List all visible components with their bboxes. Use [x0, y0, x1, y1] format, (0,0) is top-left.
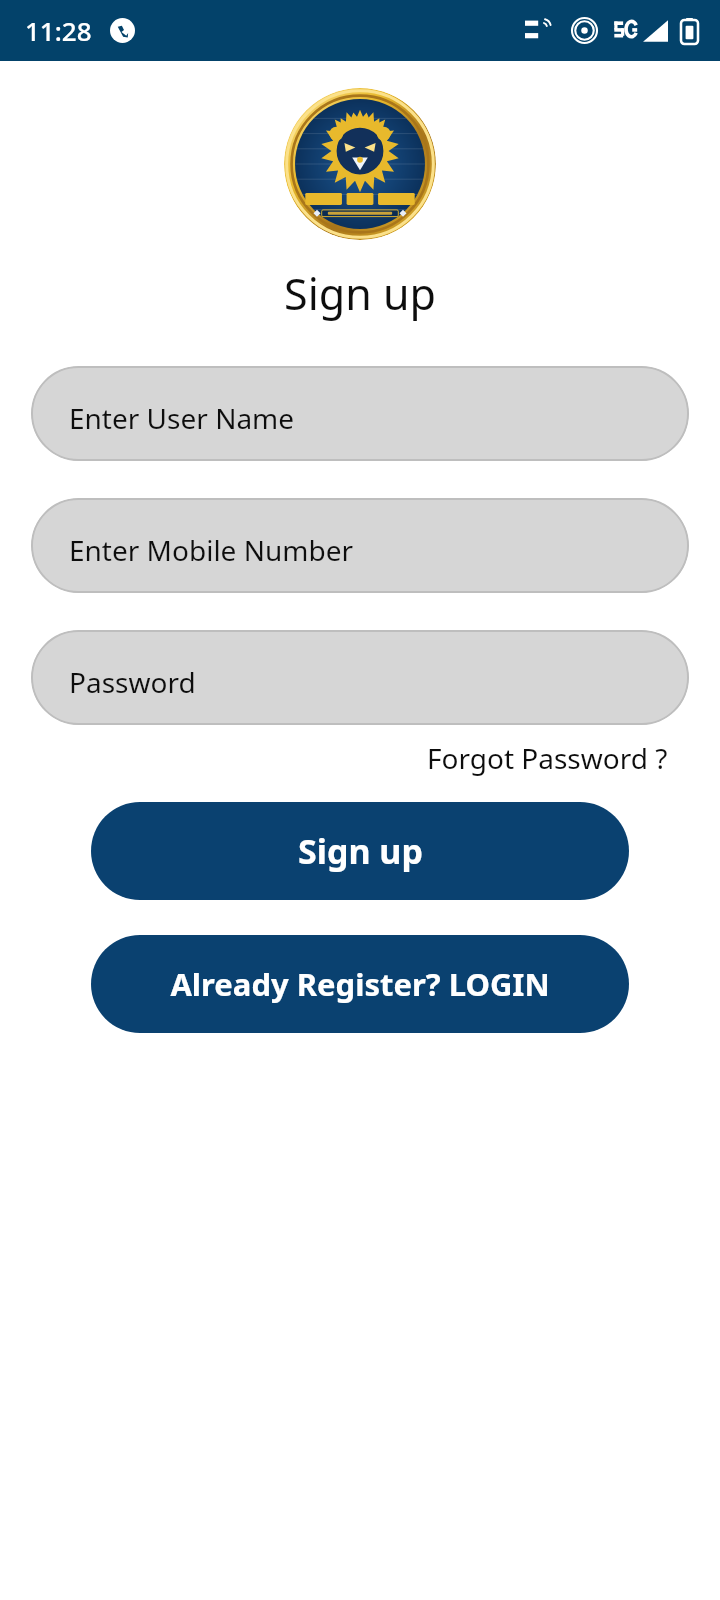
staticText: Already Register? LOGIN: [170, 963, 550, 1005]
button[interactable]: Already Register? LOGIN: [91, 935, 629, 1033]
button[interactable]: Enter User Name: [31, 366, 689, 461]
staticText: Enter User Name: [69, 399, 295, 437]
button[interactable]: Enter Mobile Number: [31, 498, 689, 593]
staticText: Sign up: [298, 828, 423, 874]
staticText: 11:28: [25, 13, 92, 48]
staticText: Password: [69, 663, 196, 701]
button[interactable]: Forgot Password ?: [425, 736, 670, 780]
button[interactable]: Password: [31, 630, 689, 725]
staticText: Enter Mobile Number: [69, 531, 354, 569]
staticText: Sign up: [284, 264, 436, 323]
button[interactable]: Kalyan King Matka logo: [284, 88, 436, 240]
button[interactable]: Sign up: [91, 802, 629, 900]
staticText: Forgot Password ?: [427, 739, 668, 777]
